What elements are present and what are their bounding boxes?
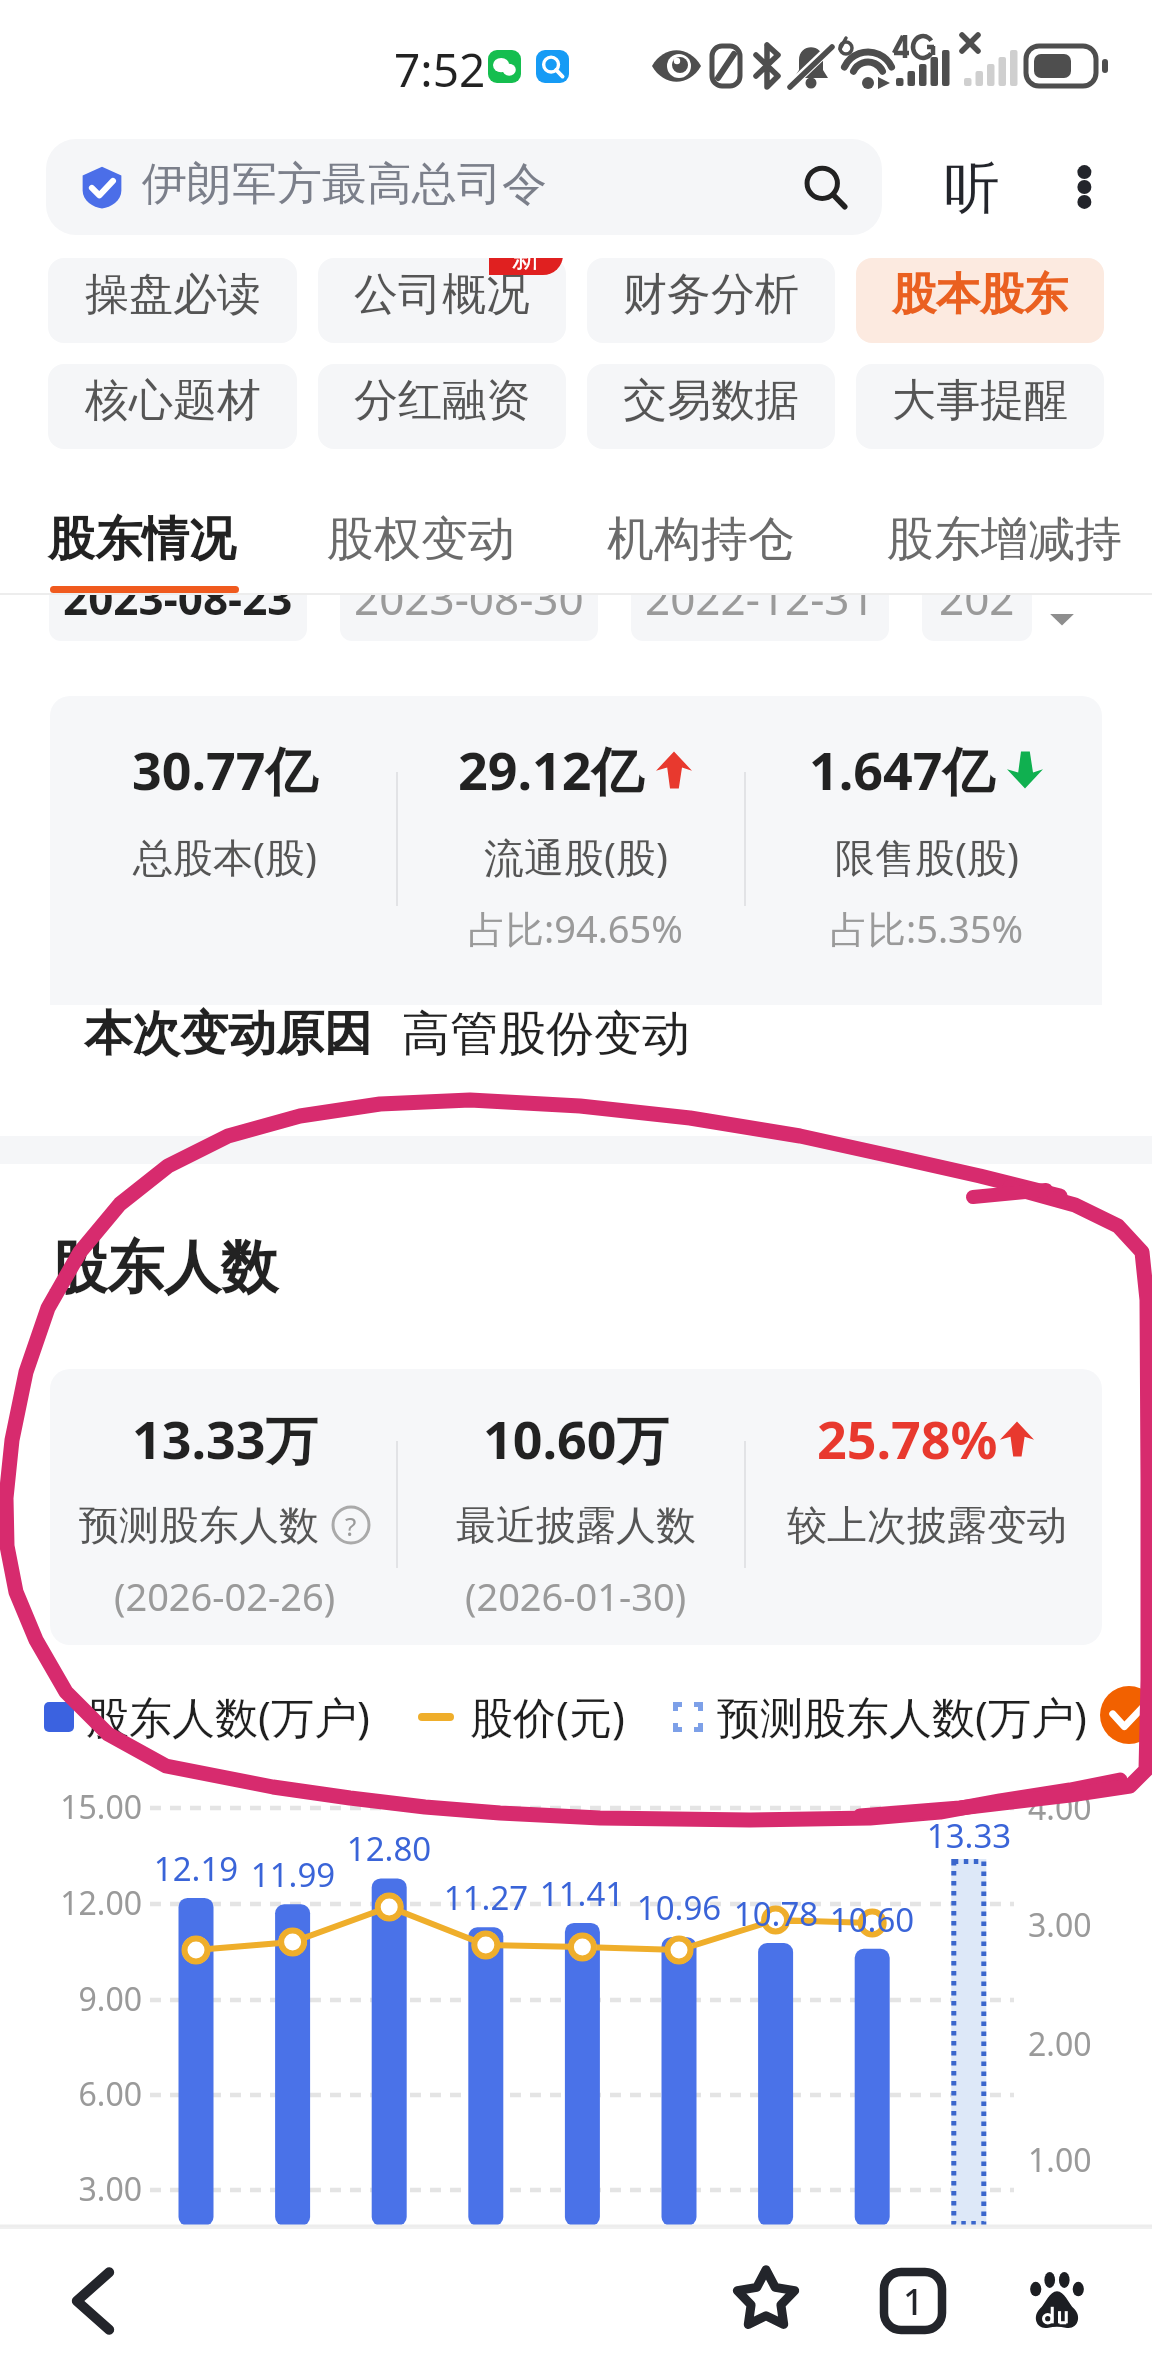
- staticText: (2026-02-26): [114, 1570, 336, 1622]
- button[interactable]: Baidu home: [1012, 2256, 1102, 2346]
- button[interactable]: 2023-08-23: [49, 555, 307, 641]
- staticText: 12.19: [136, 1846, 256, 1891]
- button[interactable]: 股东情况: [48, 510, 236, 569]
- staticText: 11.41: [522, 1871, 642, 1916]
- staticText: 较上次披露变动: [787, 1500, 1067, 1550]
- staticText: 12.00: [22, 1881, 142, 1925]
- staticText: 新: [512, 258, 540, 274]
- staticText: 操盘必读: [85, 267, 261, 322]
- button[interactable]: 2022-12-31: [631, 555, 889, 641]
- button[interactable]: 交易数据: [587, 364, 835, 449]
- button[interactable]: Back: [48, 2256, 138, 2346]
- staticText: 占比:5.35%: [830, 902, 1024, 954]
- staticText: 机构持仓: [607, 510, 795, 569]
- staticText: 大事提醒: [892, 373, 1068, 428]
- button[interactable]: 操盘必读: [48, 258, 297, 343]
- staticText: 预测股东人数: [79, 1500, 319, 1550]
- staticText: 伊朗军方最高总司令: [142, 156, 547, 213]
- button[interactable]: 股本股东: [856, 258, 1104, 343]
- button[interactable]: 大事提醒: [856, 364, 1104, 449]
- staticText: 2.00: [1028, 2022, 1092, 2066]
- staticText: 2023-08-23: [63, 568, 293, 628]
- staticText: ?: [345, 1508, 357, 1543]
- button[interactable]: 伊朗军方最高总司令: [46, 139, 882, 235]
- staticText: 3.00: [22, 2167, 142, 2211]
- staticText: 高管股份变动: [402, 1004, 690, 1064]
- staticText: 本次变动原因: [84, 1004, 372, 1064]
- button[interactable]: Expand dates: [1012, 594, 1112, 642]
- staticText: 10.60万: [483, 1403, 669, 1474]
- button[interactable]: 机构持仓: [607, 510, 795, 569]
- staticText: 10.78: [716, 1891, 836, 1936]
- staticText: 6.00: [22, 2072, 142, 2116]
- button[interactable]: 股东人数(万户): [44, 1687, 370, 1746]
- button[interactable]: Bookmarks: [721, 2255, 811, 2345]
- staticText: 10.96: [619, 1885, 739, 1930]
- staticText: 11.99: [233, 1852, 353, 1897]
- staticText: 股价(元): [470, 1687, 625, 1746]
- staticText: 15.00: [22, 1785, 142, 1829]
- staticText: 占比:94.65%: [468, 902, 683, 954]
- staticText: 最近披露人数: [456, 1500, 696, 1550]
- staticText: 9.00: [22, 1977, 142, 2021]
- button[interactable]: 分红融资: [318, 364, 566, 449]
- staticText: 2022-12-31: [645, 568, 875, 628]
- staticText: 29.12亿: [458, 734, 644, 805]
- staticText: 股东人数: [50, 1232, 278, 1304]
- staticText: 总股本(股): [133, 829, 317, 884]
- button[interactable]: 核心题材: [48, 364, 297, 449]
- staticText: 30.77亿: [132, 734, 318, 805]
- staticText: 1.00: [1028, 2138, 1092, 2182]
- button[interactable]: 听: [930, 139, 1014, 235]
- staticText: 1.647亿: [809, 734, 995, 805]
- button[interactable]: 预测股东人数(万户): [673, 1687, 1087, 1746]
- staticText: 10.60: [812, 1897, 932, 1942]
- staticText: 202: [939, 568, 1015, 628]
- button[interactable]: 公司概况: [318, 258, 566, 343]
- staticText: 股东人数(万户): [86, 1687, 370, 1746]
- staticText: 流通股(股): [484, 829, 668, 884]
- staticText: 预测股东人数(万户): [717, 1687, 1087, 1746]
- staticText: 13.33: [909, 1813, 1029, 1858]
- staticText: 股东增减持: [887, 510, 1122, 569]
- button[interactable]: 202: [922, 555, 1032, 641]
- staticText: 分红融资: [354, 373, 530, 428]
- staticText: 1: [903, 2277, 924, 2326]
- button[interactable]: 股东增减持: [887, 510, 1122, 569]
- staticText: 限售股(股): [835, 829, 1019, 884]
- staticText: 25.78%: [817, 1403, 998, 1474]
- staticText: 核心题材: [85, 373, 261, 428]
- button[interactable]: Confirm selection: [1100, 1686, 1152, 1744]
- staticText: 股本股东: [892, 267, 1068, 322]
- staticText: 12.80: [329, 1826, 449, 1871]
- button[interactable]: 股价(元): [418, 1687, 625, 1746]
- staticText: 7:52: [394, 38, 486, 101]
- button[interactable]: Tabs: [868, 2256, 958, 2346]
- staticText: 财务分析: [623, 267, 799, 322]
- staticText: 3.00: [1028, 1903, 1092, 1947]
- staticText: 11.27: [426, 1875, 546, 1920]
- button[interactable]: 2023-08-30: [340, 555, 598, 641]
- button[interactable]: 股权变动: [327, 510, 515, 569]
- staticText: 2023-08-30: [354, 568, 584, 628]
- staticText: 股东情况: [48, 510, 236, 569]
- button[interactable]: 财务分析: [587, 258, 835, 343]
- staticText: 4.00: [1028, 1786, 1092, 1830]
- staticText: 公司概况: [354, 267, 530, 322]
- button[interactable]: More options: [1054, 156, 1116, 218]
- staticText: 13.33万: [132, 1403, 318, 1474]
- staticText: 听: [944, 153, 1000, 221]
- staticText: (2026-01-30): [465, 1570, 687, 1622]
- staticText: 股权变动: [327, 510, 515, 569]
- button[interactable]: 本次变动原因: [50, 1005, 1102, 1093]
- staticText: 交易数据: [623, 373, 799, 428]
